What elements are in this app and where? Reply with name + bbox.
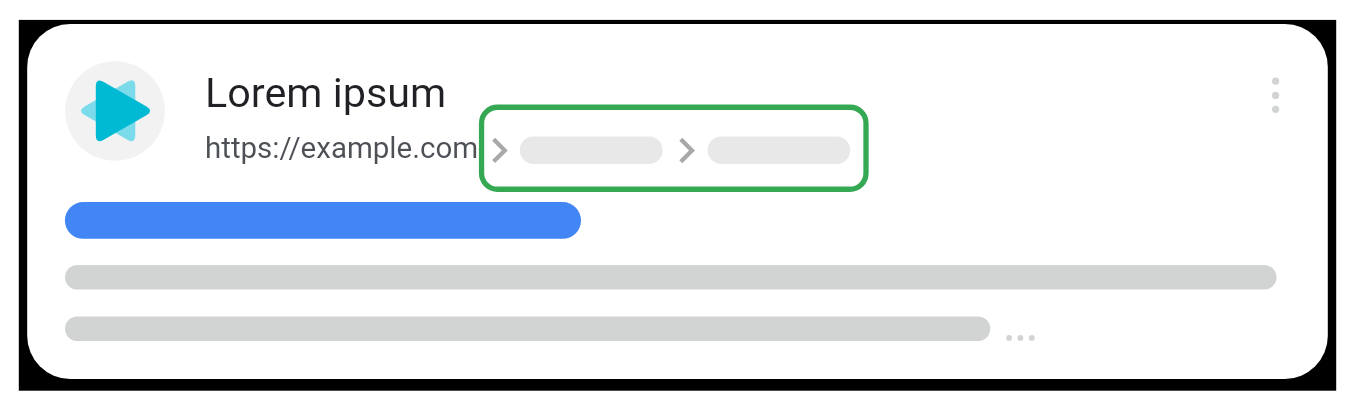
button[interactable]: Site icon bbox=[65, 61, 165, 161]
button[interactable]: https://example.com bbox=[205, 131, 479, 166]
staticText: Lorem ipsum bbox=[205, 69, 447, 117]
button[interactable]: Result link bbox=[65, 202, 581, 239]
button[interactable]: Breadcrumb trail bbox=[479, 104, 869, 192]
staticText: https://example.com bbox=[205, 131, 479, 166]
button[interactable]: Search result for Lorem ipsum bbox=[27, 24, 1328, 379]
button[interactable]: Lorem ipsum bbox=[205, 69, 447, 117]
button[interactable]: More options bbox=[1254, 60, 1298, 130]
